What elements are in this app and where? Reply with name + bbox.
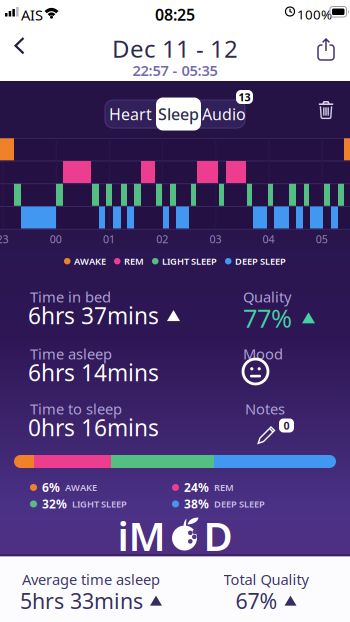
- staticText: Quality: [243, 287, 291, 306]
- staticText: 02: [156, 232, 168, 246]
- staticText: D: [203, 509, 232, 562]
- staticText: LIGHT SLEEP: [162, 255, 217, 267]
- staticText: 04: [263, 232, 275, 246]
- staticText: 24%: [184, 479, 209, 495]
- staticText: 05: [316, 232, 328, 246]
- staticText: Heart: [109, 103, 152, 125]
- staticText: 6%: [42, 479, 60, 495]
- staticText: Dec 11 - 12: [112, 32, 238, 64]
- button[interactable]: 0: [246, 416, 286, 444]
- staticText: REM: [214, 481, 234, 494]
- staticText: Time in bed: [30, 287, 111, 306]
- staticText: iM: [117, 509, 165, 562]
- staticText: 00: [50, 232, 62, 246]
- staticText: Average time asleep: [22, 569, 160, 589]
- staticText: DEEP SLEEP: [214, 498, 265, 510]
- staticText: Total Quality: [223, 569, 308, 589]
- staticText: DEEP SLEEP: [235, 255, 286, 267]
- staticText: LIGHT SLEEP: [72, 498, 127, 510]
- button[interactable]: [318, 101, 334, 119]
- staticText: 08:25: [155, 4, 195, 25]
- staticText: 0hrs 16mins: [28, 412, 159, 443]
- button[interactable]: [318, 38, 334, 60]
- button[interactable]: [14, 38, 26, 54]
- staticText: 03: [209, 232, 221, 246]
- button[interactable]: Audio: [202, 100, 246, 128]
- staticText: 01: [103, 232, 115, 246]
- staticText: 22:57 - 05:35: [132, 60, 217, 80]
- staticText: Time asleep: [30, 344, 112, 363]
- staticText: Notes: [245, 399, 285, 418]
- staticText: 6hrs 37mins: [28, 300, 159, 331]
- staticText: 38%: [184, 496, 209, 512]
- staticText: 32%: [42, 496, 67, 512]
- staticText: Audio: [202, 103, 246, 125]
- staticText: 5hrs 33mins: [20, 586, 143, 615]
- staticText: Mood: [243, 344, 283, 363]
- staticText: 77%: [243, 301, 292, 335]
- staticText: 13: [238, 90, 250, 104]
- button[interactable]: Heart: [105, 100, 156, 128]
- staticText: Sleep: [158, 103, 199, 125]
- staticText: AWAKE: [74, 255, 106, 267]
- staticText: 67%: [235, 586, 277, 615]
- staticText: AIS: [21, 5, 43, 24]
- staticText: 6hrs 14mins: [28, 357, 159, 388]
- staticText: REM: [124, 255, 144, 267]
- staticText: AWAKE: [65, 481, 97, 494]
- staticText: 100%: [297, 5, 332, 23]
- staticText: Time to sleep: [30, 399, 122, 418]
- staticText: 0: [283, 418, 289, 433]
- button[interactable]: [243, 359, 268, 384]
- staticText: 23: [0, 232, 9, 246]
- button[interactable]: Sleep: [156, 97, 201, 130]
